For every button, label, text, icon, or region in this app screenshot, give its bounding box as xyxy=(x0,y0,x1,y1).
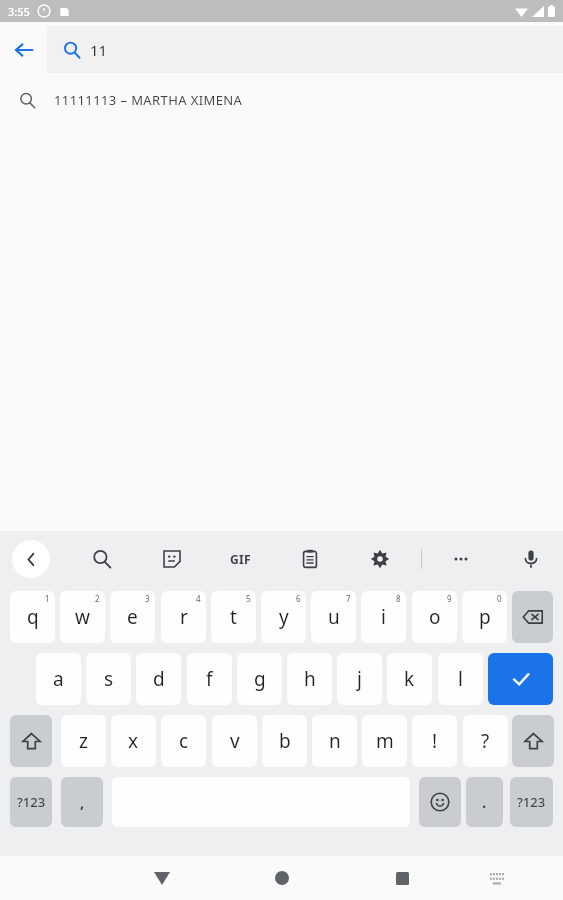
button[interactable]: Backspace xyxy=(512,591,553,643)
button[interactable]: a xyxy=(36,653,81,705)
staticText: l xyxy=(458,666,463,692)
button[interactable]: c xyxy=(161,715,206,767)
button[interactable]: Enter xyxy=(488,653,553,705)
staticText: y xyxy=(279,604,289,630)
button[interactable]: v xyxy=(212,715,257,767)
staticText: GIF xyxy=(230,551,251,567)
button[interactable]: x xyxy=(111,715,156,767)
button[interactable]: GIF xyxy=(219,538,261,580)
button[interactable]: ? xyxy=(463,715,508,767)
button[interactable]: Symbols xyxy=(510,777,553,827)
staticText: r xyxy=(180,604,188,630)
staticText: j xyxy=(357,666,362,692)
button[interactable]: s xyxy=(86,653,131,705)
staticText: k xyxy=(404,666,415,692)
button[interactable]: More options xyxy=(440,538,482,580)
button[interactable]: Shift xyxy=(10,715,52,767)
staticText: o xyxy=(429,604,441,630)
button[interactable]: r xyxy=(161,591,206,643)
button[interactable]: d xyxy=(136,653,181,705)
button[interactable]: f xyxy=(187,653,232,705)
staticText: a xyxy=(53,666,64,692)
staticText: . xyxy=(482,792,487,812)
button[interactable]: Voice input xyxy=(510,538,552,580)
button[interactable]: i xyxy=(361,591,406,643)
button[interactable]: z xyxy=(61,715,106,767)
button[interactable]: Period xyxy=(466,777,503,827)
staticText: m xyxy=(376,728,394,754)
staticText: 6 xyxy=(296,593,301,604)
button[interactable]: m xyxy=(362,715,407,767)
staticText: 8 xyxy=(396,593,401,604)
button[interactable]: b xyxy=(262,715,307,767)
staticText: i xyxy=(381,604,386,630)
staticText: , xyxy=(80,792,85,812)
staticText: b xyxy=(279,728,291,754)
button[interactable]: w xyxy=(60,591,105,643)
button[interactable]: Back xyxy=(140,856,184,900)
staticText: f xyxy=(206,666,213,692)
button[interactable]: g xyxy=(237,653,282,705)
staticText: 4 xyxy=(196,593,201,604)
staticText: z xyxy=(79,728,88,754)
staticText: 9 xyxy=(447,593,452,604)
staticText: u xyxy=(328,604,340,630)
staticText: ! xyxy=(432,728,438,754)
staticText: 3 xyxy=(145,593,150,604)
button[interactable]: Stickers xyxy=(151,538,193,580)
button[interactable]: t xyxy=(211,591,256,643)
button[interactable]: Clipboard xyxy=(289,538,331,580)
button[interactable]: Recents xyxy=(380,856,424,900)
button[interactable]: Shift xyxy=(512,715,554,767)
staticText: e xyxy=(127,604,138,630)
button[interactable]: Search xyxy=(55,33,89,67)
button[interactable]: Settings xyxy=(359,538,401,580)
button[interactable]: ! xyxy=(412,715,457,767)
staticText: 1 xyxy=(45,593,50,604)
button[interactable]: p xyxy=(462,591,507,643)
button[interactable]: l xyxy=(438,653,483,705)
staticText: 11111113 – MARTHA XIMENA xyxy=(54,91,243,109)
staticText: q xyxy=(27,604,39,630)
staticText: g xyxy=(254,666,266,692)
staticText: t xyxy=(230,604,237,630)
staticText: v xyxy=(230,728,240,754)
staticText: p xyxy=(479,604,491,630)
staticText: x xyxy=(128,728,139,754)
button[interactable]: k xyxy=(387,653,432,705)
staticText: ?123 xyxy=(517,793,546,811)
button[interactable]: n xyxy=(312,715,357,767)
button[interactable]: Back xyxy=(12,540,50,578)
button[interactable]: Emoji xyxy=(419,777,461,827)
button[interactable]: Home xyxy=(260,856,304,900)
button[interactable]: y xyxy=(261,591,306,643)
staticText: 5 xyxy=(246,593,251,604)
button[interactable]: q xyxy=(10,591,55,643)
button[interactable]: Switch keyboard xyxy=(475,856,519,900)
button[interactable]: Comma xyxy=(61,777,103,827)
staticText: c xyxy=(179,728,189,754)
button[interactable]: Back xyxy=(6,32,42,68)
button[interactable]: u xyxy=(311,591,356,643)
staticText: 11 xyxy=(90,40,108,60)
staticText: d xyxy=(153,666,165,692)
button[interactable]: j xyxy=(337,653,382,705)
button[interactable]: 11111113 – MARTHA XIMENA xyxy=(0,77,563,123)
staticText: n xyxy=(329,728,341,754)
button[interactable]: e xyxy=(110,591,155,643)
staticText: w xyxy=(75,604,90,630)
button[interactable]: Search xyxy=(81,538,123,580)
button[interactable]: h xyxy=(287,653,332,705)
staticText: 3:55 xyxy=(8,4,30,19)
staticText: 0 xyxy=(497,593,502,604)
staticText: ?123 xyxy=(17,793,46,811)
button[interactable]: Symbols xyxy=(10,777,52,827)
staticText: ? xyxy=(481,728,490,754)
staticText: s xyxy=(104,666,114,692)
staticText: h xyxy=(304,666,316,692)
button[interactable]: o xyxy=(412,591,457,643)
staticText: 7 xyxy=(346,593,351,604)
staticText: 2 xyxy=(95,593,100,604)
